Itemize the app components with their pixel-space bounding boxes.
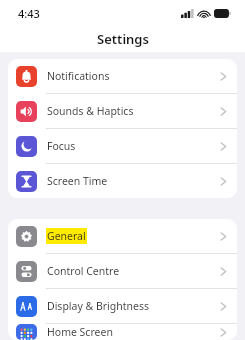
button[interactable]: Focus [8, 129, 237, 163]
button[interactable]: Control Centre [8, 254, 237, 288]
button[interactable]: Home Screen [8, 324, 237, 340]
button[interactable]: Screen Time [8, 164, 237, 198]
staticText: Notifications [47, 69, 110, 83]
staticText: Screen Time [47, 174, 108, 188]
staticText: Sounds & Haptics [47, 104, 134, 118]
staticText: Display & Brightness [47, 299, 150, 313]
staticText: 4:43 [18, 6, 40, 21]
staticText: General [47, 229, 86, 243]
button[interactable]: General [8, 219, 237, 253]
staticText: Focus [47, 139, 76, 153]
staticText: Home Screen [47, 325, 113, 339]
staticText: Settings [97, 30, 149, 48]
staticText: Control Centre [47, 264, 120, 278]
button[interactable]: Display & Brightness [8, 289, 237, 323]
button[interactable]: Notifications [8, 59, 237, 93]
button[interactable]: Sounds & Haptics [8, 94, 237, 128]
